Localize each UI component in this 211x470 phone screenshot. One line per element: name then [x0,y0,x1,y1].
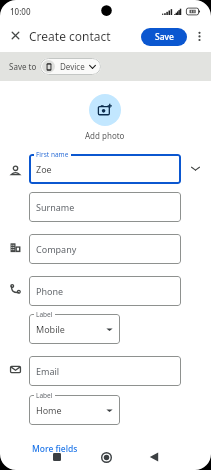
staticText: Home [36,404,62,416]
button[interactable]: Surname [29,192,181,222]
staticText: Mobile [36,323,65,335]
button[interactable]: Close [6,26,25,45]
button[interactable]: Expand name fields [186,159,204,177]
staticText: Surname [36,201,75,213]
button[interactable]: Add photo [89,94,121,126]
staticText: Label [36,391,53,400]
button[interactable]: Zoe [29,154,181,184]
button[interactable]: Phone [29,276,181,306]
staticText: Save [155,31,174,43]
button[interactable]: Mobile [29,314,120,344]
staticText: Create contact [29,28,111,44]
button[interactable]: More options [190,27,208,45]
button[interactable]: Back [145,448,163,466]
staticText: Zoe [36,163,52,175]
button[interactable]: Company [29,234,181,264]
staticText: Save to [9,61,37,72]
button[interactable]: Home [29,395,120,425]
button[interactable]: More fields [27,441,83,457]
button[interactable]: Save [141,28,187,46]
staticText: Label [36,310,53,319]
staticText: More fields [32,443,78,455]
staticText: First name [36,150,69,159]
staticText: 10:00 [10,6,31,17]
button[interactable]: Home [97,448,115,466]
button[interactable]: Device [40,58,101,75]
staticText: Company [36,243,77,255]
staticText: Device [60,61,85,72]
staticText: Email [36,365,60,377]
button[interactable]: Email [29,356,181,386]
staticText: Add photo [85,130,125,141]
staticText: Phone [36,285,64,297]
button[interactable]: Recent apps [48,448,66,466]
